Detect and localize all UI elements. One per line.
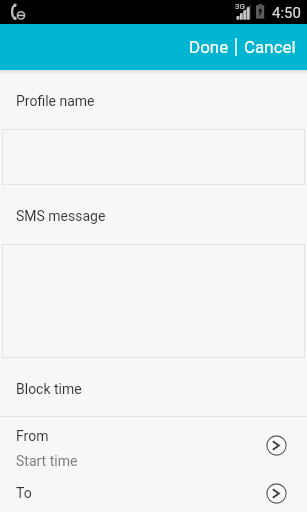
button[interactable]: To — [0, 474, 307, 512]
staticText: To — [16, 485, 32, 501]
staticText: Start time — [16, 453, 78, 469]
other: Call blocking active — [10, 3, 26, 20]
staticText: SMS message — [16, 208, 106, 224]
button[interactable]: SMS message input — [2, 244, 305, 358]
staticText: From — [16, 428, 49, 444]
other: Choose time — [266, 435, 287, 456]
button[interactable]: From — [0, 417, 307, 474]
other: Choose time — [266, 483, 287, 504]
button[interactable]: Cancel — [237, 26, 307, 68]
button[interactable]: Profile name input — [2, 129, 305, 185]
staticText: Profile name — [16, 93, 95, 109]
staticText: 4:50 — [272, 4, 301, 22]
staticText: Block time — [16, 381, 82, 397]
staticText: Cancel — [244, 37, 296, 57]
staticText: 3G — [235, 2, 245, 11]
button[interactable]: Done — [175, 26, 235, 68]
staticText: Done — [189, 37, 229, 57]
